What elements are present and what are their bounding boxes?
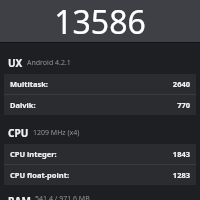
button[interactable]: Dalvik: [4,95,196,115]
staticText: UX [8,56,23,70]
staticText: 1283 [172,170,190,180]
staticText: Multitask: [10,79,48,89]
staticText: CPU float-point: [10,170,70,180]
staticText: 1843 [172,149,190,159]
staticText: 2640 [172,79,190,89]
staticText: Android 4.2.1 [27,58,71,68]
staticText: CPU [8,126,29,140]
button[interactable]: CPU integer: [4,144,196,165]
staticText: CPU integer: [10,149,57,159]
staticText: 541.4 / 971.6 MB [35,194,90,200]
staticText: 13586 [54,0,146,42]
button[interactable]: 13586 [0,0,200,42]
staticText: 770 [177,100,190,110]
button[interactable]: Multitask: [4,74,196,95]
staticText: Dalvik: [10,100,36,110]
staticText: 1209 MHz (x4) [33,128,80,138]
staticText: RAM [8,194,31,200]
button[interactable]: CPU float-point: [4,165,196,185]
